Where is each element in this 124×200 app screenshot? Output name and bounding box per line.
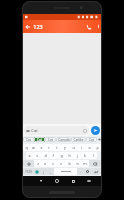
button[interactable]: Comma	[47, 168, 54, 175]
button[interactable]: y	[61, 144, 69, 151]
button[interactable]: Cat	[34, 137, 45, 142]
button[interactable]: Call	[83, 20, 94, 33]
button[interactable]: p	[93, 144, 101, 151]
staticText: t	[56, 145, 58, 150]
button[interactable]: r	[45, 144, 53, 151]
staticText: n	[76, 161, 79, 166]
staticText: h	[68, 153, 71, 158]
staticText: 123	[33, 23, 43, 30]
staticText: Canada	[58, 138, 70, 142]
button[interactable]: s	[33, 152, 41, 159]
staticText: Cat	[31, 128, 38, 134]
button[interactable]: Home	[49, 176, 65, 186]
staticText: j	[77, 153, 78, 158]
button[interactable]: Enter	[91, 168, 101, 175]
button[interactable]: Symbols	[23, 168, 33, 175]
staticText: w	[32, 145, 35, 150]
staticText: c	[52, 161, 54, 166]
button[interactable]: i	[77, 144, 85, 151]
button[interactable]: d	[41, 152, 49, 159]
button[interactable]: b	[65, 160, 73, 167]
button[interactable]: More suggestions	[97, 136, 101, 143]
button[interactable]: x	[41, 160, 49, 167]
staticText: q	[25, 145, 28, 150]
staticText: .	[80, 169, 81, 174]
button[interactable]: f	[49, 152, 57, 159]
staticText: m	[83, 161, 87, 166]
staticText: i	[81, 145, 82, 150]
staticText: Cat	[26, 138, 31, 142]
staticText: v	[60, 161, 62, 166]
button[interactable]: Space	[54, 168, 77, 175]
button[interactable]: Back	[33, 176, 49, 186]
button[interactable]: Catlike	[71, 137, 86, 142]
staticText: ,	[50, 169, 51, 174]
button[interactable]: Cat	[86, 137, 97, 142]
button[interactable]: Send	[91, 126, 100, 135]
button[interactable]: h	[65, 152, 73, 159]
button[interactable]: Change keyboard	[81, 176, 97, 186]
button[interactable]: Backspace	[89, 160, 101, 167]
button[interactable]: Period	[77, 168, 84, 175]
staticText: Cat	[89, 138, 94, 142]
button[interactable]: Cat	[24, 126, 89, 135]
button[interactable]: u	[69, 144, 77, 151]
staticText: p	[96, 145, 99, 150]
button[interactable]: t	[53, 144, 61, 151]
button[interactable]: Back	[22, 20, 33, 33]
button[interactable]: More options	[94, 20, 102, 33]
staticText: x	[44, 161, 46, 166]
button[interactable]: Settings	[84, 168, 91, 175]
staticText: e	[40, 145, 43, 150]
staticText: k	[84, 153, 86, 158]
staticText: z	[37, 161, 39, 166]
staticText: u	[72, 145, 75, 150]
staticText: b	[68, 161, 71, 166]
button[interactable]: c	[49, 160, 57, 167]
button[interactable]: w	[30, 144, 37, 151]
button[interactable]: j	[73, 152, 81, 159]
button[interactable]: k	[81, 152, 89, 159]
button[interactable]: z	[34, 160, 41, 167]
button[interactable]: l	[89, 152, 97, 159]
staticText: r	[48, 145, 50, 150]
staticText: ?123	[25, 170, 32, 174]
staticText: Catlike	[73, 138, 84, 142]
button[interactable]: Language	[40, 168, 47, 175]
button[interactable]: o	[85, 144, 93, 151]
staticText: o	[88, 145, 91, 150]
button[interactable]: n	[73, 160, 81, 167]
staticText: f	[52, 153, 54, 158]
button[interactable]: m	[81, 160, 89, 167]
staticText: d	[44, 153, 47, 158]
button[interactable]: Recents	[65, 176, 81, 186]
staticText: a	[28, 153, 31, 158]
button[interactable]: q	[23, 144, 30, 151]
button[interactable]: Cat	[45, 137, 56, 142]
staticText: ¡	[43, 170, 44, 174]
button[interactable]: v	[57, 160, 65, 167]
staticText: l	[93, 153, 94, 158]
staticText: y	[64, 145, 66, 150]
button[interactable]: 123	[33, 20, 83, 33]
button[interactable]: a	[26, 152, 33, 159]
button[interactable]: Cat	[23, 137, 34, 142]
staticText: g	[60, 153, 63, 158]
button[interactable]: Emoji	[33, 168, 40, 175]
staticText: Cat	[37, 138, 42, 142]
button[interactable]: e	[37, 144, 45, 151]
staticText: Cat	[48, 138, 53, 142]
button[interactable]: g	[57, 152, 65, 159]
button[interactable]: Shift	[23, 160, 34, 167]
staticText: s	[36, 153, 38, 158]
button[interactable]: Canada	[56, 137, 71, 142]
